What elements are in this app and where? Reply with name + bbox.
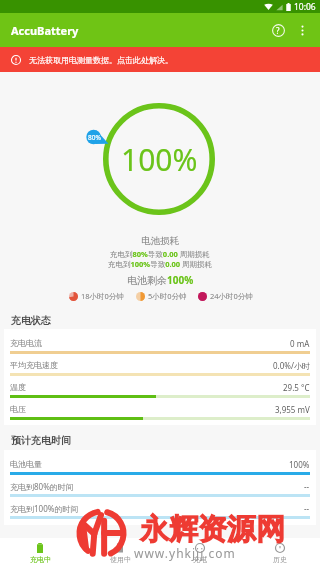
button[interactable]: 平均充电速度 — [4, 360, 316, 376]
staticText: 0.0%/小时 — [273, 360, 310, 371]
staticText: 充电电流 — [10, 338, 42, 348]
button[interactable]: 充电 — [160, 538, 240, 569]
staticText: 充电到80%导致0.00 周期损耗 — [110, 249, 210, 259]
staticText: -- — [304, 503, 310, 514]
staticText: www.yhkjjj.com — [134, 545, 236, 561]
button[interactable]: 无法获取用电测量数据。点击此处解决。 — [0, 47, 320, 72]
button[interactable]: More options — [291, 17, 313, 43]
staticText: 平均充电速度 — [10, 360, 58, 370]
button[interactable]: 温度 — [4, 382, 316, 398]
button[interactable]: 充电中 — [0, 538, 80, 569]
button[interactable]: 历史 — [240, 538, 320, 569]
button[interactable]: 充电到100%的时间 — [4, 503, 316, 519]
staticText: 充电 — [193, 555, 207, 564]
staticText: 29.5 °C — [283, 382, 310, 393]
button[interactable]: 电池电量 — [4, 459, 316, 475]
button[interactable]: 充电电流 — [4, 338, 316, 354]
button[interactable]: 使用中 — [80, 538, 160, 569]
staticText: 电池电量 — [10, 459, 42, 469]
staticText: 18小时0分钟 — [81, 291, 124, 301]
staticText: 历史 — [273, 555, 287, 564]
staticText: AccuBattery — [11, 23, 79, 38]
staticText: 24小时0分钟 — [210, 291, 253, 301]
button[interactable]: 电压 — [4, 404, 316, 420]
staticText: 3,955 mV — [275, 404, 310, 415]
staticText: 10:06 — [294, 1, 316, 13]
staticText: 温度 — [10, 382, 26, 392]
staticText: -- — [304, 481, 310, 492]
staticText: 充电中 — [30, 555, 51, 564]
staticText: 100% — [289, 459, 310, 470]
button[interactable]: Help — [265, 16, 291, 44]
staticText: 充电到80%的时间 — [10, 481, 74, 492]
staticText: 0 mA — [290, 338, 310, 349]
staticText: 100% — [121, 139, 198, 180]
staticText: 5小时0分钟 — [148, 291, 187, 301]
staticText: 充电到100%的时间 — [10, 503, 79, 514]
staticText: 永辉资源网 — [140, 511, 285, 548]
staticText: 预计充电时间 — [11, 434, 71, 447]
staticText: 80% — [88, 133, 101, 142]
staticText: 无法获取用电测量数据。点击此处解决。 — [29, 55, 173, 65]
staticText: 电池剩余100% — [127, 273, 194, 287]
staticText: 电压 — [10, 404, 26, 414]
staticText: 充电到100%导致0.00 周期损耗 — [108, 259, 213, 269]
staticText: ? — [276, 25, 280, 36]
staticText: 充电状态 — [11, 314, 51, 327]
staticText: 使用中 — [110, 555, 131, 564]
button[interactable]: 充电到80%的时间 — [4, 481, 316, 497]
staticText: 电池损耗 — [141, 235, 179, 247]
